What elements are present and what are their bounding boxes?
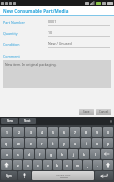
button[interactable]: 2: [13, 127, 24, 137]
button[interactable]: d: [24, 149, 34, 159]
button[interactable]: New: [1, 118, 18, 124]
staticText: z: [17, 163, 19, 168]
staticText: x: [27, 163, 29, 168]
button[interactable]: Cancel: [96, 109, 111, 115]
button[interactable]: New item. In original packaging.: [3, 60, 111, 88]
button[interactable]: Quantity: [0, 30, 114, 37]
button[interactable]: c: [33, 160, 42, 170]
button[interactable]: s: [13, 149, 23, 159]
staticText: New: [7, 119, 13, 123]
staticText: g: [50, 152, 53, 157]
button[interactable]: g: [46, 149, 56, 159]
staticText: f: [39, 152, 41, 157]
button[interactable]: More suggestions: [109, 119, 113, 124]
staticText: 10: [48, 30, 53, 35]
staticText: u: [74, 141, 77, 146]
button[interactable]: Next: [19, 118, 36, 124]
button[interactable]: x: [23, 160, 32, 170]
staticText: q: [5, 141, 8, 146]
button[interactable]: i: [81, 138, 91, 148]
button[interactable]: u: [70, 138, 80, 148]
button[interactable]: Voice input: [18, 171, 31, 180]
button[interactable]: Part Number: [0, 19, 114, 26]
staticText: 6: [63, 130, 65, 135]
staticText: i: [86, 141, 87, 146]
button[interactable]: Backspace: [101, 149, 113, 159]
button[interactable]: y: [59, 138, 69, 148]
staticText: 8: [85, 130, 87, 135]
staticText: New item. In original packaging.: [5, 62, 57, 67]
staticText: Comment: [3, 54, 20, 59]
button[interactable]: k: [79, 149, 89, 159]
staticText: New Consumable Part/Media: [3, 8, 69, 14]
staticText: 1: [6, 130, 8, 135]
button[interactable]: Space: [32, 171, 94, 180]
staticText: .: [97, 163, 98, 168]
staticText: e: [30, 141, 32, 146]
staticText: 2: [18, 130, 20, 135]
button[interactable]: Save: [79, 109, 94, 115]
staticText: o: [96, 141, 99, 146]
staticText: Save: [83, 110, 90, 114]
staticText: 7: [74, 130, 76, 135]
button[interactable]: v: [43, 160, 52, 170]
staticText: y: [63, 141, 65, 146]
button[interactable]: .: [93, 160, 102, 170]
button[interactable]: w: [13, 138, 24, 148]
button[interactable]: 4: [37, 127, 47, 137]
staticText: s: [17, 152, 19, 157]
button[interactable]: o: [92, 138, 102, 148]
button[interactable]: ,: [83, 160, 92, 170]
staticText: Next: [24, 119, 31, 123]
staticText: n: [66, 163, 69, 168]
staticText: h: [61, 152, 64, 157]
button[interactable]: 8: [81, 127, 91, 137]
staticText: 5: [52, 130, 54, 135]
button[interactable]: Condition: [0, 41, 114, 48]
staticText: ,: [87, 163, 88, 168]
button[interactable]: l: [90, 149, 100, 159]
button[interactable]: 3: [25, 127, 36, 137]
button[interactable]: 1: [1, 127, 12, 137]
button[interactable]: Shift: [103, 160, 113, 170]
staticText: 3: [30, 130, 32, 135]
button[interactable]: j: [68, 149, 78, 159]
staticText: v: [47, 163, 49, 168]
staticText: Sym: [6, 174, 12, 178]
staticText: t: [52, 141, 54, 146]
staticText: m: [76, 163, 80, 168]
staticText: j: [73, 152, 74, 157]
staticText: l: [95, 152, 96, 157]
button[interactable]: Shift: [1, 160, 12, 170]
staticText: Google voice: [56, 173, 71, 176]
staticText: 4: [41, 130, 43, 135]
button[interactable]: q: [1, 138, 12, 148]
button[interactable]: Enter: [95, 171, 113, 180]
button[interactable]: r: [37, 138, 47, 148]
button[interactable]: n: [63, 160, 72, 170]
button[interactable]: 0: [103, 127, 113, 137]
staticText: Cancel: [99, 110, 109, 114]
button[interactable]: 7: [70, 127, 80, 137]
button[interactable]: a: [1, 149, 12, 159]
staticText: Part Number: [3, 20, 25, 25]
staticText: c: [37, 163, 39, 168]
button[interactable]: 6: [59, 127, 69, 137]
button[interactable]: Sym: [1, 171, 17, 180]
button[interactable]: 5: [48, 127, 58, 137]
staticText: w: [17, 141, 20, 146]
button[interactable]: t: [48, 138, 58, 148]
staticText: p: [107, 141, 110, 146]
button[interactable]: z: [13, 160, 22, 170]
button[interactable]: 9: [92, 127, 102, 137]
button[interactable]: p: [103, 138, 113, 148]
button[interactable]: e: [25, 138, 36, 148]
staticText: Condition: [3, 42, 20, 47]
staticText: 0: [107, 130, 109, 135]
staticText: Quantity: [3, 31, 18, 36]
staticText: 9: [96, 130, 98, 135]
button[interactable]: b: [53, 160, 62, 170]
button[interactable]: m: [73, 160, 82, 170]
button[interactable]: f: [35, 149, 45, 159]
button[interactable]: h: [57, 149, 67, 159]
